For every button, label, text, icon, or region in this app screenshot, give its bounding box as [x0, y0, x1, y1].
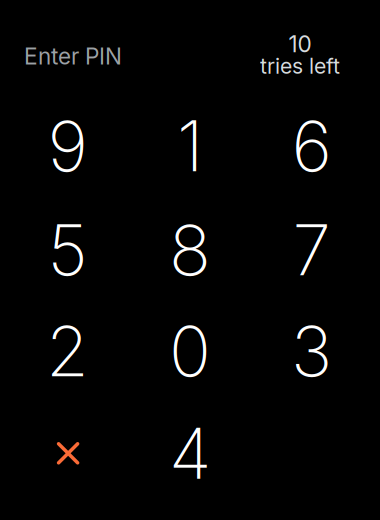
- button[interactable]: 4: [129, 403, 251, 504]
- staticText: 10: [288, 30, 311, 58]
- staticText: Enter PIN: [24, 42, 122, 70]
- staticText: 2: [46, 309, 89, 393]
- button[interactable]: Delete: [7, 403, 129, 504]
- staticText: 9: [47, 104, 87, 188]
- button[interactable]: 0: [129, 300, 251, 401]
- staticText: 6: [291, 104, 331, 188]
- staticText: tries left: [260, 53, 340, 79]
- button[interactable]: 7: [250, 199, 372, 300]
- staticText: 1: [177, 104, 203, 188]
- staticText: 7: [292, 208, 330, 292]
- button[interactable]: 1: [129, 95, 251, 196]
- staticText: 8: [169, 208, 211, 292]
- button[interactable]: 9: [6, 95, 128, 196]
- button[interactable]: 3: [250, 300, 372, 401]
- staticText: 4: [169, 412, 211, 495]
- button[interactable]: 2: [6, 300, 128, 401]
- staticText: 3: [291, 309, 332, 393]
- button[interactable]: 6: [250, 95, 372, 196]
- staticText: 0: [169, 309, 211, 393]
- button[interactable]: 8: [129, 199, 251, 300]
- button[interactable]: 5: [6, 199, 128, 300]
- staticText: 5: [47, 208, 87, 292]
